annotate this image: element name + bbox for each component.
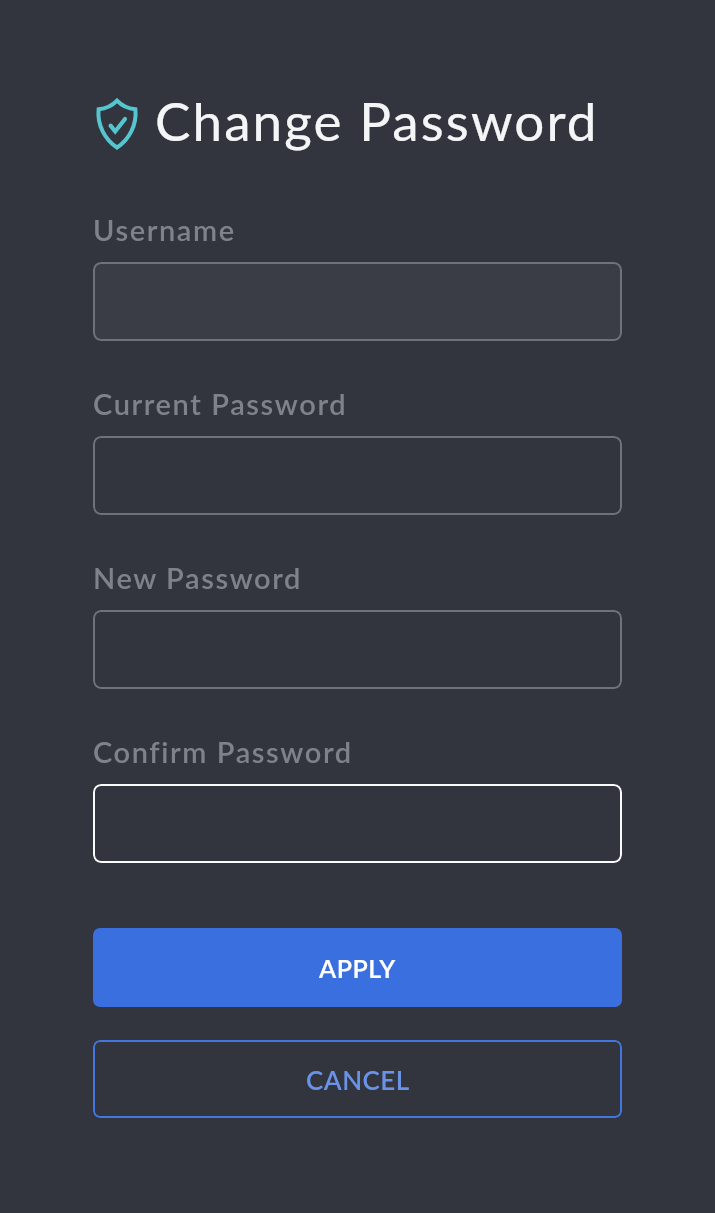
staticText: Confirm Password [93, 734, 353, 769]
staticText: New Password [93, 560, 302, 595]
staticText: Change Password [155, 89, 599, 153]
button[interactable] [93, 784, 622, 863]
staticText: APPLY [319, 953, 396, 983]
staticText: Username [93, 212, 236, 247]
button[interactable]: CANCEL [93, 1040, 622, 1118]
staticText: Current Password [93, 386, 348, 421]
button[interactable] [93, 436, 622, 515]
staticText: CANCEL [306, 1064, 410, 1095]
button[interactable] [93, 262, 622, 341]
button[interactable]: APPLY [93, 928, 622, 1007]
button[interactable] [93, 610, 622, 689]
